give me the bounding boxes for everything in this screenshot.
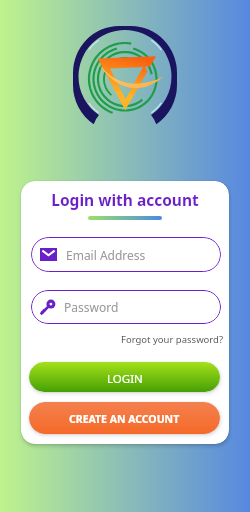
staticText: Login with account <box>21 189 229 210</box>
staticText: Email Address <box>66 247 146 263</box>
staticText: LOGIN <box>107 371 143 387</box>
button[interactable]: LOGIN <box>29 362 220 392</box>
button[interactable]: Email Address <box>31 237 221 272</box>
button[interactable]: CREATE AN ACCOUNT <box>29 402 220 434</box>
button[interactable]: Password <box>31 290 221 324</box>
button[interactable]: Forgot your password? <box>121 333 224 346</box>
staticText: CREATE AN ACCOUNT <box>69 412 180 426</box>
other: App logo <box>70 24 180 134</box>
staticText: Password <box>64 299 119 315</box>
